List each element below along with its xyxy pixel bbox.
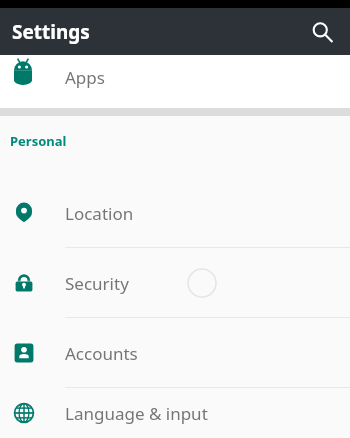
staticText: Security [65, 272, 129, 295]
staticText: Accounts [65, 342, 138, 365]
button[interactable]: Search [302, 12, 342, 52]
button[interactable]: Accounts [0, 318, 350, 388]
button[interactable]: Language & input [0, 388, 350, 438]
staticText: Location [65, 202, 134, 225]
staticText: Apps [65, 66, 105, 89]
button[interactable]: Location [0, 178, 350, 248]
button[interactable]: Apps [0, 55, 350, 108]
button[interactable]: Security [0, 248, 350, 318]
staticText: Personal [10, 132, 67, 150]
staticText: Language & input [65, 402, 208, 425]
staticText: Settings [12, 19, 90, 45]
